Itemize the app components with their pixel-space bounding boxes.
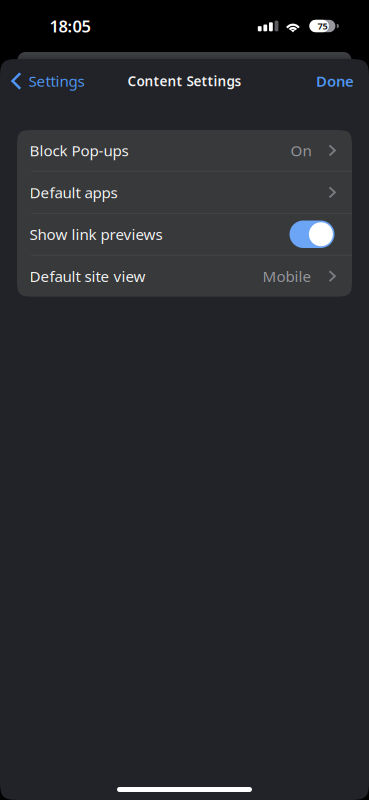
button[interactable]: Default apps xyxy=(17,172,352,213)
staticText: 18:05 xyxy=(49,15,90,37)
button[interactable]: Done xyxy=(304,59,369,103)
staticText: 75 xyxy=(317,20,327,32)
staticText: Default site view xyxy=(29,266,145,286)
staticText: Block Pop-ups xyxy=(29,140,128,161)
staticText: Settings xyxy=(29,71,85,91)
staticText: Mobile xyxy=(262,266,311,286)
button[interactable]: Settings xyxy=(0,59,95,103)
staticText: Show link previews xyxy=(29,224,162,245)
button[interactable]: Block Pop-ups xyxy=(17,130,352,171)
staticText: On xyxy=(290,140,311,161)
staticText: Content Settings xyxy=(127,72,241,90)
button[interactable]: Default site view xyxy=(17,256,352,297)
staticText: Default apps xyxy=(29,182,117,203)
button[interactable]: Show link previews xyxy=(289,220,334,248)
staticText: Done xyxy=(316,71,354,91)
button[interactable]: Show link previews xyxy=(17,214,352,255)
